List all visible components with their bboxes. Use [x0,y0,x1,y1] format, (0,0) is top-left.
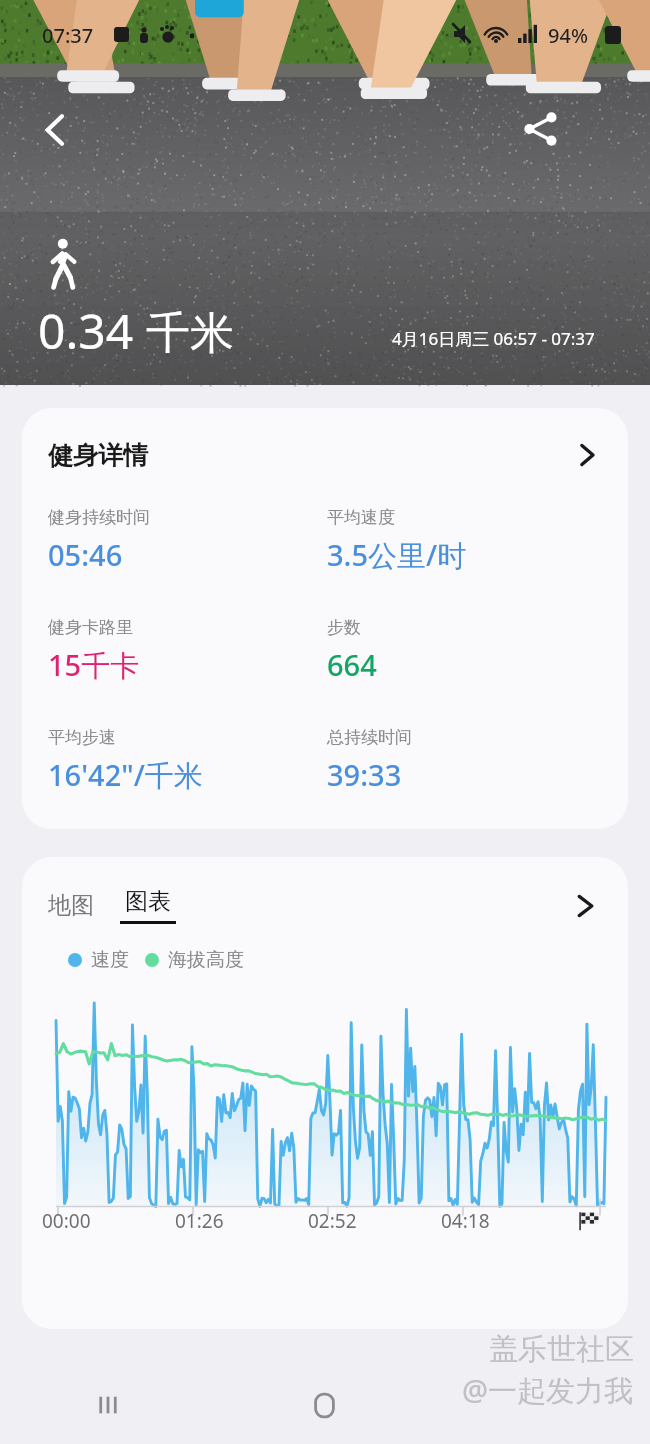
staticText: 海拔高度 [168,948,244,972]
staticText: 94% [548,22,588,49]
staticText: 15千卡 [48,645,140,685]
button[interactable]: 健身详情 [22,408,628,829]
staticText: 速度 [91,948,129,972]
staticText: 04:18 [441,1208,490,1234]
staticText: 健身卡路里 [48,617,133,638]
staticText: 01:26 [175,1208,224,1234]
button[interactable]: Home [216,1366,433,1444]
staticText: 健身详情 [48,440,148,471]
button[interactable]: Recents [0,1366,216,1444]
staticText: 664 [327,645,377,684]
staticText: 02:52 [308,1208,357,1234]
staticText: 07:37 [42,22,94,49]
button[interactable]: Back [433,1366,650,1444]
button[interactable]: Open chart [568,889,602,923]
staticText: @一起发力我 [462,1370,634,1410]
button[interactable]: 地图 [48,891,98,920]
staticText: 4月16日周三 06:57 - 07:37 [392,327,595,350]
staticText: 05:46 [48,535,123,574]
staticText: 健身持续时间 [48,507,150,528]
button[interactable]: Back [26,100,86,160]
staticText: 总持续时间 [327,727,412,748]
staticText: 千米 [146,306,234,361]
staticText: 步数 [327,617,361,638]
staticText: 39:33 [327,755,402,794]
staticText: 平均速度 [327,507,395,528]
staticText: 盖乐世社区 [489,1331,634,1368]
staticText: 0.34 [38,298,134,363]
staticText: 00:00 [42,1208,91,1234]
staticText: 平均步速 [48,727,116,748]
button[interactable]: 图表 [120,887,176,924]
staticText: 地图 [48,891,94,920]
staticText: 图表 [125,887,171,916]
staticText: 3.5公里/时 [327,535,467,575]
staticText: 16'42"/千米 [48,755,203,795]
button[interactable]: Share [512,100,570,158]
